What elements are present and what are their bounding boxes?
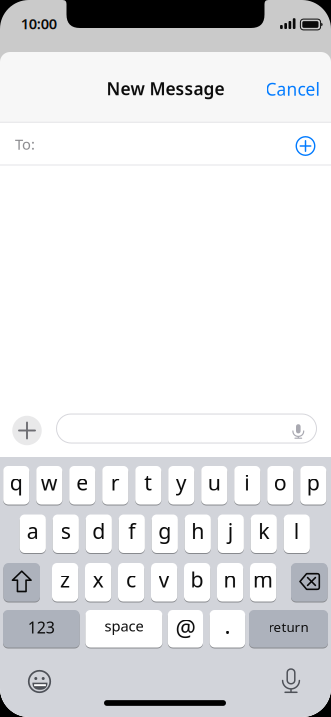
staticText: v [159,565,170,593]
staticText: g [158,517,171,545]
button[interactable]: h [185,514,211,553]
staticText: d [92,517,105,545]
button[interactable]: i [234,465,260,505]
button[interactable]: k [251,514,277,553]
button[interactable]: p [300,465,326,505]
button[interactable]: Message field [56,414,316,443]
staticText: To: [15,134,35,154]
button[interactable]: l [284,514,310,553]
button[interactable]: e [69,465,95,505]
button[interactable]: 123 [3,609,80,648]
button[interactable]: d [86,514,112,553]
staticText: Cancel [265,77,319,100]
staticText: New Message [106,77,224,100]
staticText: q [10,468,23,496]
button[interactable]: o [267,465,293,505]
button[interactable]: Shift [3,562,40,602]
staticText: 10:00 [21,14,57,33]
button[interactable]: c [118,562,144,602]
staticText: s [61,517,71,545]
staticText: i [244,468,250,496]
button[interactable]: x [85,562,111,602]
button[interactable]: Delete [291,562,327,602]
button[interactable]: f [119,514,145,553]
staticText: space [104,616,143,635]
button[interactable]: Apps [12,416,42,445]
button[interactable]: t [135,465,161,505]
staticText: j [228,517,234,545]
staticText: y [176,468,187,496]
staticText: k [258,517,269,545]
staticText: c [126,565,136,593]
button[interactable]: n [217,562,243,602]
button[interactable]: j [218,514,244,553]
staticText: p [307,468,320,496]
staticText: z [60,565,70,593]
staticText: . [224,610,230,640]
staticText: r [111,468,120,496]
staticText: 123 [28,617,55,638]
button[interactable]: Add Contact [292,133,318,159]
button[interactable]: . [210,609,245,648]
staticText: h [191,517,204,545]
button[interactable]: g [152,514,178,553]
button[interactable]: space [85,609,162,648]
button[interactable]: u [201,465,227,505]
staticText: return [268,618,308,636]
button[interactable]: w [36,465,62,505]
staticText: l [294,517,300,545]
button[interactable]: q [3,465,29,505]
staticText: o [274,468,287,496]
button[interactable]: Dictate [278,666,304,694]
button[interactable]: a [20,514,46,553]
button[interactable]: @ [168,609,203,648]
button[interactable]: Cancel [265,77,319,100]
staticText: a [27,517,39,545]
button[interactable]: z [52,562,78,602]
staticText: x [93,565,104,593]
staticText: @ [175,613,195,643]
button[interactable]: b [184,562,210,602]
button[interactable]: m [250,562,276,602]
staticText: b [191,565,204,593]
button[interactable]: s [53,514,79,553]
button[interactable]: Dictate [290,422,306,440]
staticText: u [208,468,221,496]
staticText: e [76,468,88,496]
staticText: w [41,468,58,496]
staticText: f [128,517,135,545]
staticText: t [144,468,152,496]
button[interactable]: y [168,465,194,505]
staticText: m [253,565,273,593]
button[interactable]: Emoji [24,666,54,696]
button[interactable]: return [249,609,328,648]
button[interactable]: r [102,465,128,505]
button[interactable]: v [151,562,177,602]
staticText: n [224,565,237,593]
